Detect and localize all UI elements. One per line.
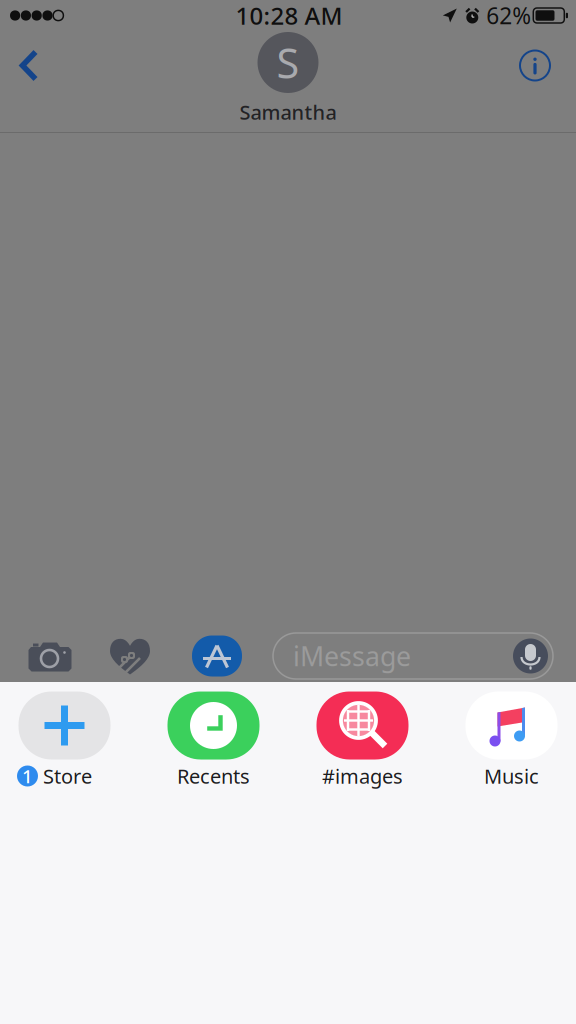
staticText: 62% bbox=[486, 0, 531, 30]
button[interactable]: iMessage bbox=[272, 625, 554, 687]
button[interactable]: S bbox=[188, 32, 388, 119]
staticText: Music bbox=[484, 763, 539, 789]
button[interactable]: Recents bbox=[139, 685, 288, 795]
staticText: 10:28 AM bbox=[235, 0, 342, 31]
staticText: 1 bbox=[22, 764, 33, 788]
button[interactable]: Details bbox=[506, 32, 564, 98]
button[interactable]: Back bbox=[0, 32, 58, 98]
button[interactable]: Store bbox=[0, 685, 139, 795]
button[interactable]: Camera bbox=[21, 625, 79, 687]
staticText: #images bbox=[322, 763, 403, 789]
staticText: Recents bbox=[177, 763, 250, 789]
staticText: iMessage bbox=[293, 638, 411, 674]
button[interactable]: Music bbox=[437, 685, 576, 795]
staticText: Samantha bbox=[239, 99, 336, 125]
staticText: S bbox=[276, 35, 299, 90]
button[interactable]: #images bbox=[288, 685, 437, 795]
staticText: Store bbox=[43, 763, 92, 789]
button[interactable]: App Store bbox=[188, 625, 246, 687]
button[interactable]: Digital Touch bbox=[101, 625, 159, 687]
